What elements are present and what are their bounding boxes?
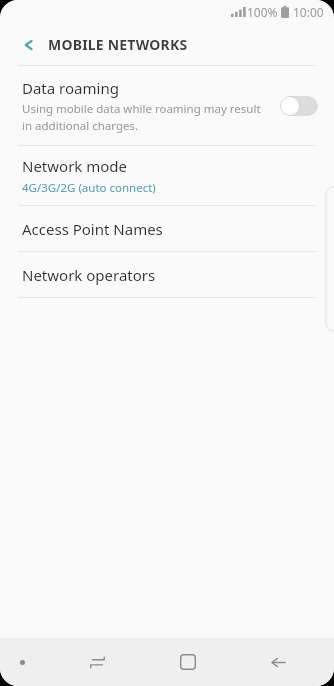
button[interactable]: Data roaming: [280, 96, 318, 116]
button[interactable]: Network operators: [0, 252, 334, 297]
button[interactable]: Hide navigation bar: [12, 652, 32, 672]
staticText: Using mobile data while roaming may resu…: [22, 101, 261, 117]
button[interactable]: Access Point Names: [0, 206, 334, 251]
staticText: MOBILE NETWORKS: [48, 35, 188, 54]
button[interactable]: Navigate up: [12, 28, 46, 62]
button[interactable]: Home: [142, 638, 233, 686]
staticText: Network operators: [22, 265, 156, 285]
button[interactable]: Back: [233, 638, 324, 686]
staticText: 100%: [247, 4, 278, 20]
button[interactable]: Recents: [52, 638, 142, 686]
staticText: 4G/3G/2G (auto connect): [22, 180, 156, 196]
staticText: 10:00: [293, 4, 324, 20]
staticText: Network mode: [22, 156, 128, 176]
staticText: Data roaming: [22, 78, 119, 98]
staticText: Access Point Names: [22, 219, 163, 239]
button[interactable]: Network mode: [0, 146, 334, 205]
staticText: in additional charges.: [22, 118, 139, 134]
button[interactable]: Data roaming: [0, 66, 334, 145]
